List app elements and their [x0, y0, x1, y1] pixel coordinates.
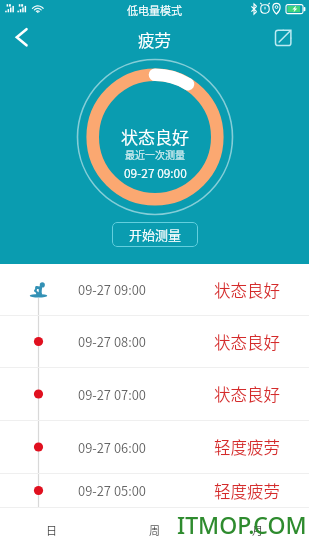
staticText: 轻度疲劳 — [214, 435, 280, 459]
staticText: 轻度疲劳 — [214, 479, 280, 503]
button[interactable]: 09-27 07:00 — [0, 368, 309, 420]
staticText: 周 — [149, 522, 160, 538]
button[interactable]: Back — [4, 20, 38, 54]
staticText: 09-27 07:00 — [78, 385, 146, 404]
button[interactable]: 09-27 05:00 — [0, 474, 309, 507]
staticText: 疲劳 — [138, 28, 171, 52]
staticText: 09-27 05:00 — [78, 481, 146, 500]
staticText: 09-27 08:00 — [78, 332, 146, 351]
staticText: 状态良好 — [214, 382, 280, 406]
staticText: 09-27 09:00 — [124, 164, 187, 181]
staticText: 09-27 06:00 — [78, 438, 146, 457]
staticText: 日 — [46, 522, 57, 538]
staticText: 09-27 09:00 — [78, 280, 146, 299]
button[interactable]: 日 — [0, 507, 103, 550]
staticText: 状态良好 — [214, 278, 280, 302]
staticText: 状态良好 — [214, 330, 280, 354]
button[interactable]: 09-27 08:00 — [0, 316, 309, 367]
staticText: 状态良好 — [121, 124, 189, 149]
staticText: 最近一次测量 — [125, 147, 185, 161]
staticText: ITMOP.COM — [177, 509, 307, 540]
button[interactable]: 开始测量 — [112, 222, 198, 247]
button[interactable]: 09-27 09:00 — [0, 264, 309, 315]
staticText: 低电量模式 — [127, 2, 182, 18]
button[interactable]: Share — [271, 20, 305, 54]
button[interactable]: 09-27 06:00 — [0, 421, 309, 473]
button[interactable]: 周 — [103, 507, 206, 550]
staticText: 开始测量 — [129, 225, 182, 244]
button[interactable]: 月 — [206, 507, 309, 550]
staticText: 月 — [252, 522, 263, 538]
